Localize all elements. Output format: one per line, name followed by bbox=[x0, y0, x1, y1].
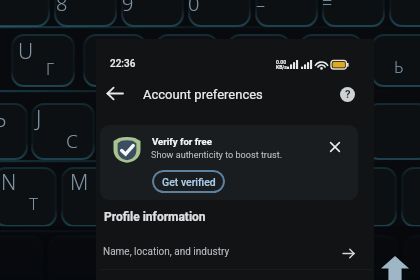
staticText: Show authenticity to boost trust. bbox=[151, 150, 283, 161]
staticText: Get verified bbox=[162, 176, 216, 188]
staticText: J bbox=[36, 104, 42, 133]
staticText: ? bbox=[345, 88, 351, 101]
staticText: Account preferences bbox=[143, 87, 263, 102]
button[interactable]: Name, location, and industry bbox=[96, 238, 376, 269]
staticText: 0.00 KB/s bbox=[276, 59, 287, 71]
staticText: N bbox=[1, 168, 17, 197]
staticText: 8 bbox=[56, 0, 68, 17]
staticText: 22:36 bbox=[110, 58, 136, 70]
staticText: T bbox=[29, 192, 39, 215]
button[interactable]: Get verified bbox=[152, 170, 225, 193]
staticText: U bbox=[18, 37, 34, 66]
staticText: Verify for free bbox=[152, 136, 212, 147]
button[interactable]: Close bbox=[327, 139, 343, 155]
staticText: Г bbox=[46, 58, 55, 80]
staticText: M bbox=[70, 168, 89, 197]
staticText: 0 bbox=[188, 0, 200, 17]
staticText: Profile information bbox=[104, 210, 206, 224]
staticText: C bbox=[66, 128, 78, 154]
staticText: – bbox=[256, 0, 265, 17]
staticText: = bbox=[322, 0, 333, 15]
button[interactable]: Verify for free bbox=[100, 125, 358, 200]
button[interactable]: Help bbox=[340, 87, 355, 102]
staticText: P bbox=[0, 112, 7, 141]
button[interactable]: Back bbox=[103, 82, 127, 106]
staticText: Name, location, and industry bbox=[103, 246, 230, 258]
staticText: 9 bbox=[122, 0, 134, 17]
staticText: Ь bbox=[394, 56, 404, 78]
